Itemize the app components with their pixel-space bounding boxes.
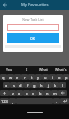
button[interactable]: w — [7, 74, 14, 80]
button[interactable]: m — [51, 90, 58, 96]
staticText: , — [12, 99, 14, 104]
button[interactable]: OK — [7, 33, 59, 43]
staticText: o — [58, 75, 61, 80]
staticText: u — [44, 75, 47, 80]
button[interactable]: y — [35, 74, 42, 80]
button[interactable]: k — [52, 82, 59, 88]
staticText: x — [18, 91, 21, 96]
staticText: y — [37, 75, 40, 80]
button[interactable]: Enter — [60, 98, 69, 104]
button[interactable]: i — [49, 74, 56, 80]
staticText: My Favourites — [21, 2, 49, 8]
staticText: What's — [55, 67, 67, 72]
staticText: e — [16, 75, 19, 80]
button[interactable]: 123 — [0, 98, 9, 104]
staticText: m — [53, 91, 57, 96]
staticText: OK — [30, 36, 36, 41]
staticText: v — [32, 91, 35, 96]
staticText: . — [56, 99, 58, 104]
staticText: z — [12, 91, 14, 96]
button[interactable]: n — [44, 90, 51, 96]
staticText: w — [9, 75, 13, 80]
button[interactable]: l — [59, 82, 66, 88]
button[interactable]: Backspace — [58, 90, 67, 96]
button[interactable]: r — [21, 74, 28, 80]
staticText: h — [40, 83, 43, 88]
button[interactable]: d — [17, 82, 24, 88]
staticText: f — [27, 83, 29, 88]
staticText: 123 — [1, 99, 8, 104]
button[interactable]: Back — [0, 0, 10, 10]
button[interactable]: j — [45, 82, 52, 88]
button[interactable]: Shift — [0, 90, 9, 96]
button[interactable]: a — [3, 82, 10, 88]
staticText: j — [48, 83, 50, 88]
staticText: a — [5, 83, 8, 88]
button[interactable]: p — [63, 74, 69, 80]
button[interactable]: You — [0, 66, 18, 73]
button[interactable]: I — [18, 66, 35, 73]
staticText: New Task List — [3, 17, 63, 22]
button[interactable]: h — [38, 82, 45, 88]
staticText: k — [54, 83, 57, 88]
staticText: p — [65, 75, 68, 80]
button[interactable]: , — [9, 98, 16, 104]
button[interactable]: s — [10, 82, 17, 88]
staticText: g — [33, 83, 36, 88]
button[interactable]: x — [16, 90, 23, 96]
staticText: c — [26, 91, 28, 96]
staticText: You — [6, 67, 13, 72]
button[interactable]: c — [23, 90, 30, 96]
button[interactable]: e — [14, 74, 21, 80]
staticText: l — [62, 83, 64, 88]
staticText: I — [26, 67, 28, 72]
button[interactable]: t — [28, 74, 35, 80]
button[interactable]: What — [35, 66, 52, 73]
button[interactable]: q — [0, 74, 7, 80]
button[interactable]: o — [56, 74, 63, 80]
staticText: d — [19, 83, 22, 88]
button[interactable]: v — [30, 90, 37, 96]
staticText: s — [13, 83, 15, 88]
staticText: n — [46, 91, 49, 96]
staticText: r — [24, 75, 26, 80]
staticText: q — [2, 75, 5, 80]
staticText: What — [39, 67, 48, 72]
staticText: i — [52, 75, 54, 80]
button[interactable]: b — [37, 90, 44, 96]
button[interactable] — [7, 24, 59, 31]
button[interactable]: g — [31, 82, 38, 88]
button[interactable]: f — [24, 82, 31, 88]
button[interactable]: z — [9, 90, 16, 96]
staticText: t — [31, 75, 33, 80]
button[interactable]: What's — [52, 66, 69, 73]
button[interactable]: . — [53, 98, 60, 104]
staticText: b — [39, 91, 42, 96]
button[interactable]: u — [42, 74, 49, 80]
